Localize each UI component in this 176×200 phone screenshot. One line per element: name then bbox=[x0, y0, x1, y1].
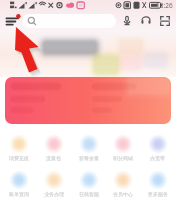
button[interactable]: 办宽带 bbox=[141, 134, 174, 161]
button[interactable]: Scan bbox=[158, 14, 172, 28]
button[interactable]: Voice search bbox=[120, 14, 134, 28]
button[interactable]: 会员中心 bbox=[106, 170, 139, 197]
staticText: 会员中心 bbox=[113, 191, 133, 197]
staticText: 积分商城 bbox=[113, 155, 133, 161]
button[interactable]: 话费充值 bbox=[2, 134, 35, 161]
button[interactable]: 账单查询 bbox=[2, 170, 35, 197]
staticText: 流量包 bbox=[46, 155, 61, 161]
staticText: 业务办理 bbox=[44, 191, 64, 197]
staticText: 18:26 bbox=[156, 1, 173, 10]
button[interactable] bbox=[22, 14, 116, 28]
button[interactable]: 积分商城 bbox=[106, 134, 139, 161]
button[interactable]: 流量包 bbox=[37, 134, 70, 161]
staticText: 话费充值 bbox=[9, 155, 29, 161]
button[interactable]: 套餐余量 bbox=[72, 134, 105, 161]
button[interactable]: 更多服务 bbox=[141, 170, 174, 197]
button[interactable]: Menu bbox=[3, 13, 21, 29]
staticText: 更多服务 bbox=[148, 191, 168, 197]
staticText: 在线客服 bbox=[79, 191, 99, 197]
staticText: 办宽带 bbox=[150, 155, 165, 161]
staticText: 账单查询 bbox=[9, 191, 29, 197]
button[interactable] bbox=[5, 77, 171, 124]
staticText: 套餐余量 bbox=[79, 155, 99, 161]
button[interactable]: Customer service bbox=[139, 14, 153, 28]
button[interactable]: 在线客服 bbox=[72, 170, 105, 197]
button[interactable]: 业务办理 bbox=[37, 170, 70, 197]
